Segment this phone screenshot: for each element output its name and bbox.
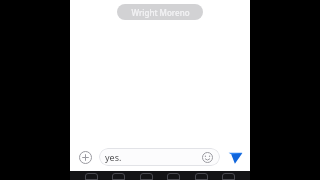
button[interactable] xyxy=(85,173,98,180)
button[interactable]: Emoji xyxy=(201,151,214,164)
button[interactable]: Send xyxy=(225,147,245,167)
button[interactable] xyxy=(167,173,180,180)
button[interactable]: Add attachment xyxy=(75,147,95,167)
button[interactable] xyxy=(195,173,208,180)
button[interactable]: yes. xyxy=(99,148,220,166)
staticText: yes. xyxy=(105,151,201,163)
button[interactable] xyxy=(140,173,153,180)
staticText: Wright Moreno xyxy=(131,7,190,18)
button[interactable]: Wright Moreno xyxy=(117,4,203,20)
button[interactable] xyxy=(112,173,125,180)
button[interactable] xyxy=(222,173,235,180)
